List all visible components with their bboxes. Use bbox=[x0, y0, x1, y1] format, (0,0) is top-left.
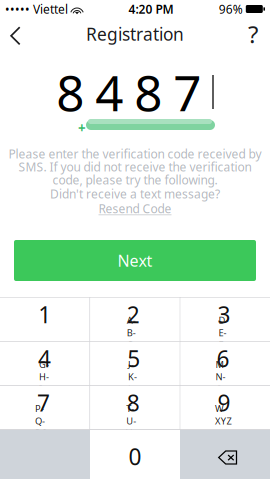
staticText: ABC bbox=[127, 314, 139, 339]
staticText: DEF bbox=[218, 314, 229, 339]
button[interactable]: 6 bbox=[180, 342, 270, 385]
staticText: WXYZ bbox=[215, 402, 233, 427]
button[interactable]: Resend Code bbox=[94, 199, 175, 217]
staticText bbox=[134, 462, 136, 475]
staticText: 4 bbox=[95, 59, 123, 125]
staticText: ? bbox=[248, 18, 258, 50]
button[interactable]: 9 bbox=[180, 386, 270, 429]
staticText: Please enter the verification code recei… bbox=[8, 146, 261, 162]
button[interactable]: Back bbox=[0, 17, 33, 51]
staticText: 1 bbox=[38, 299, 51, 329]
staticText: 7 bbox=[173, 59, 201, 125]
staticText: Didn't receive a text message? bbox=[50, 186, 220, 202]
staticText: code, please try the following. bbox=[52, 172, 217, 188]
button[interactable]: Delete bbox=[180, 430, 270, 479]
button[interactable]: Help bbox=[236, 16, 270, 52]
staticText: 5 bbox=[127, 343, 140, 373]
staticText: 4 bbox=[38, 343, 51, 373]
staticText: 0 bbox=[128, 441, 141, 471]
staticText: + bbox=[78, 119, 86, 137]
staticText: 7 bbox=[37, 387, 50, 418]
staticText: 4:20 PM bbox=[128, 1, 173, 17]
staticText: 3 bbox=[217, 299, 230, 329]
staticText: GHI bbox=[39, 358, 50, 383]
staticText bbox=[44, 320, 46, 333]
staticText: ••••• bbox=[5, 1, 30, 17]
staticText: PQRS bbox=[35, 402, 52, 427]
button[interactable]: 8 bbox=[90, 386, 180, 429]
button[interactable]: 2 bbox=[90, 298, 180, 341]
button[interactable]: 1 bbox=[0, 298, 89, 341]
staticText: TUV bbox=[126, 402, 140, 427]
button[interactable]: 0 bbox=[90, 430, 180, 479]
staticText: 96% bbox=[219, 1, 243, 17]
button[interactable]: 4 bbox=[0, 342, 89, 385]
staticText: Resend Code bbox=[98, 201, 171, 217]
button[interactable]: 7 bbox=[0, 386, 89, 429]
button[interactable]: Next bbox=[14, 240, 256, 281]
staticText: Next bbox=[117, 250, 152, 271]
staticText: Viettel bbox=[33, 1, 68, 17]
staticText: SMS. If you did not receive the verifica… bbox=[18, 159, 251, 175]
staticText: 8 bbox=[56, 59, 84, 125]
staticText: Registration bbox=[86, 22, 184, 45]
staticText: MNO bbox=[215, 358, 230, 383]
staticText: 9 bbox=[217, 387, 230, 418]
button[interactable]: 5 bbox=[90, 342, 180, 385]
staticText: JKL bbox=[128, 358, 140, 383]
staticText: 2 bbox=[127, 299, 140, 329]
staticText: 8 bbox=[127, 387, 140, 418]
staticText: 8 bbox=[134, 59, 162, 125]
button[interactable]: 3 bbox=[180, 298, 270, 341]
staticText: 6 bbox=[216, 343, 229, 373]
